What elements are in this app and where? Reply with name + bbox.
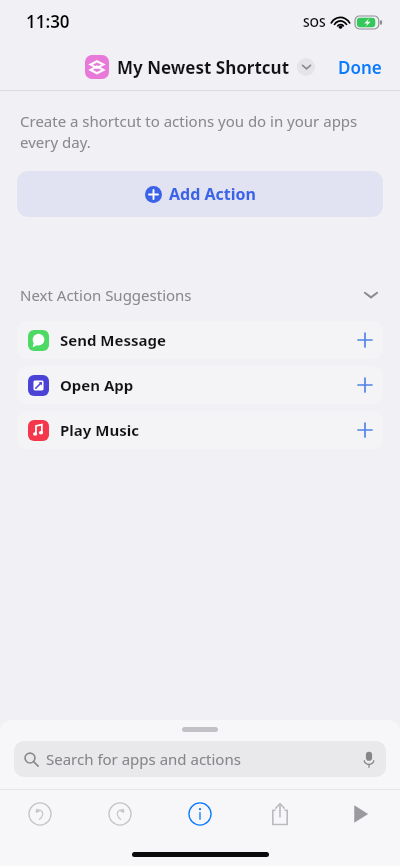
button[interactable]: Next Action Suggestions — [0, 281, 400, 309]
button[interactable]: Open App — [17, 366, 383, 404]
staticText: Next Action Suggestions — [20, 285, 192, 305]
staticText: Send Message — [60, 330, 166, 350]
button[interactable]: Redo — [80, 790, 160, 838]
staticText: Open App — [60, 375, 134, 395]
other: Voice search — [362, 751, 376, 768]
staticText: SOS — [303, 14, 326, 30]
button[interactable]: Info — [160, 790, 240, 838]
staticText: Add Action — [169, 183, 256, 205]
button[interactable]: Done — [320, 46, 400, 89]
button[interactable]: Undo — [0, 790, 80, 838]
staticText: Create a shortcut to actions you do in y… — [20, 111, 380, 153]
button[interactable]: Send Message — [17, 321, 383, 359]
button[interactable]: Play — [320, 790, 400, 838]
staticText: 11:30 — [26, 10, 70, 33]
staticText: My Newest Shortcut — [117, 56, 290, 79]
staticText: Search for apps and actions — [46, 749, 241, 769]
button[interactable]: Search for apps and actions — [14, 741, 386, 777]
button[interactable]: Play Music — [17, 411, 383, 449]
button[interactable]: My Newest Shortcut — [81, 51, 319, 83]
button[interactable]: Share — [240, 790, 320, 838]
staticText: Play Music — [60, 420, 139, 440]
button[interactable]: Add Action — [17, 171, 383, 217]
